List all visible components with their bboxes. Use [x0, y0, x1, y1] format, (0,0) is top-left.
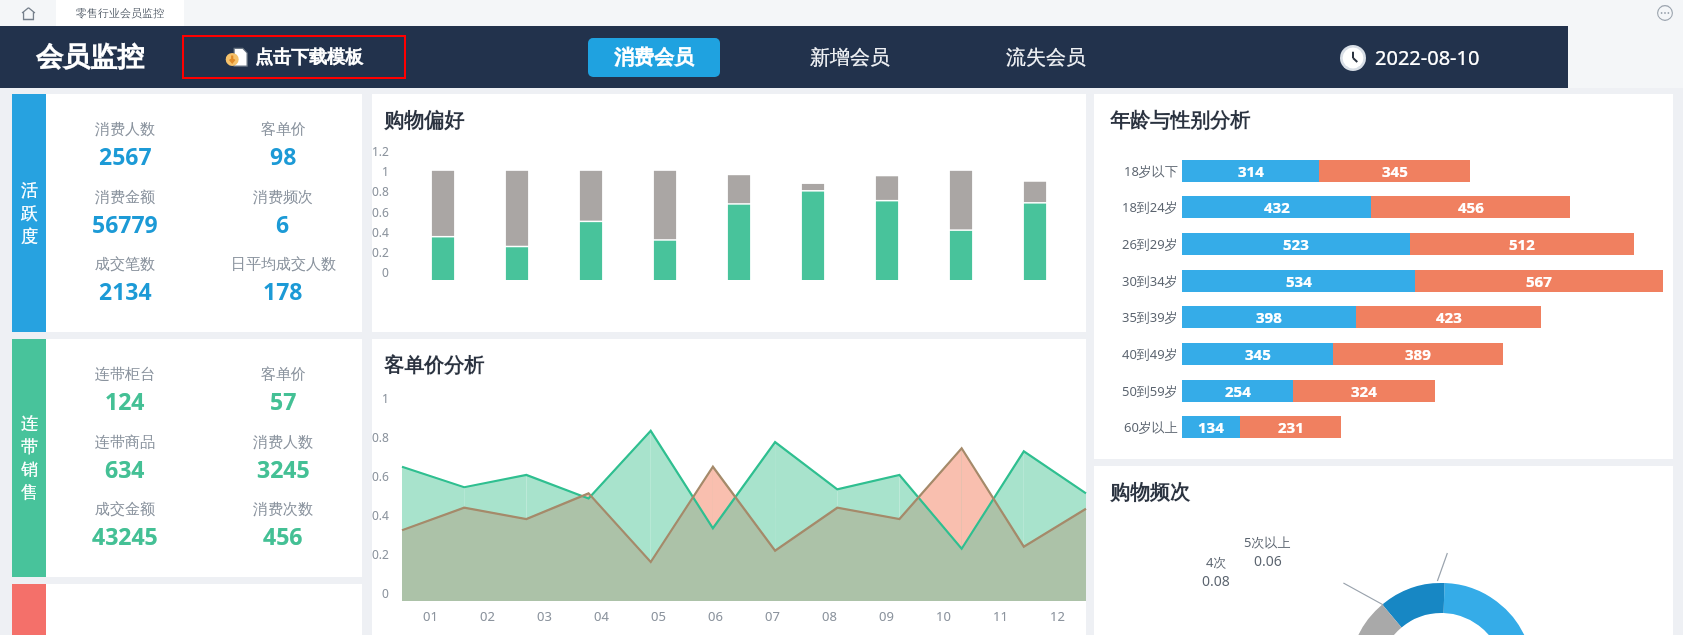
staticText: 度	[21, 226, 38, 247]
staticText: 05	[651, 607, 666, 625]
staticText: 35到39岁	[1122, 308, 1178, 326]
staticText: 18到24岁	[1122, 198, 1178, 216]
staticText: 0.2	[372, 546, 389, 562]
staticText: 432	[1264, 197, 1290, 217]
staticText: 124	[105, 385, 145, 416]
staticText: 客单价分析	[384, 353, 484, 378]
button[interactable]: 年龄与性别分析	[1094, 94, 1673, 459]
staticText: 0.8	[372, 429, 389, 445]
staticText: 50到59岁	[1122, 382, 1178, 400]
button[interactable]: 活	[12, 94, 362, 332]
staticText: 5次以上	[1244, 533, 1291, 551]
staticText: 0.6	[372, 204, 389, 220]
staticText: 客单价	[261, 365, 306, 384]
staticText: 消费人数	[253, 433, 313, 452]
button[interactable]: 消费会员	[588, 38, 720, 77]
staticText: 年龄与性别分析	[1110, 108, 1250, 133]
staticText: 带	[21, 436, 38, 457]
staticText: 389	[1405, 344, 1431, 364]
button[interactable]: 购物频次	[1094, 466, 1673, 635]
button[interactable]	[12, 584, 362, 635]
staticText: 连	[21, 413, 38, 434]
staticText: 6	[276, 208, 290, 239]
button[interactable]: Home	[0, 0, 56, 26]
staticText: 30到34岁	[1122, 272, 1178, 290]
staticText: 254	[1225, 381, 1251, 401]
staticText: 60岁以上	[1124, 418, 1178, 436]
staticText: 0	[382, 264, 389, 280]
staticText: 324	[1351, 381, 1377, 401]
button[interactable]: 新增会员	[784, 38, 916, 77]
staticText: 43245	[92, 520, 158, 551]
staticText: 流失会员	[1006, 45, 1086, 70]
staticText: 1	[382, 390, 389, 406]
staticText: 销	[21, 459, 38, 480]
staticText: 567	[1526, 271, 1552, 291]
staticText: 点击下载模板	[255, 46, 363, 69]
staticText: 4次	[1206, 553, 1227, 571]
staticText: 98	[270, 140, 297, 171]
staticText: 456	[263, 520, 303, 551]
button[interactable]: 点击下载模板	[182, 35, 406, 79]
staticText: 成交笔数	[95, 255, 155, 274]
staticText: 3245	[257, 453, 310, 484]
staticText: 09	[879, 607, 894, 625]
staticText: 消费次数	[253, 500, 313, 519]
staticText: 231	[1278, 417, 1304, 437]
staticText: 2134	[99, 275, 152, 306]
staticText: 18岁以下	[1124, 162, 1178, 180]
staticText: 512	[1509, 234, 1535, 254]
staticText: 04	[594, 607, 609, 625]
button[interactable]: 零售行业会员监控	[56, 0, 184, 26]
staticText: 购物偏好	[384, 108, 464, 133]
staticText: 活	[21, 180, 38, 201]
staticText: 1	[382, 163, 389, 179]
staticText: 消费人数	[95, 120, 155, 139]
staticText: 客单价	[261, 120, 306, 139]
button[interactable]: 购物偏好	[372, 94, 1086, 332]
staticText: 10	[936, 607, 951, 625]
staticText: 0.2	[372, 244, 389, 260]
staticText: 634	[105, 453, 145, 484]
staticText: 成交金额	[95, 500, 155, 519]
staticText: 523	[1283, 234, 1309, 254]
staticText: 08	[822, 607, 837, 625]
staticText: 连带商品	[95, 433, 155, 452]
staticText: 57	[270, 385, 297, 416]
staticText: 2567	[99, 140, 152, 171]
button[interactable]: 流失会员	[980, 38, 1112, 77]
staticText: 01	[423, 607, 438, 625]
button[interactable]: 客单价分析	[372, 339, 1086, 635]
staticText: 连带柜台	[95, 365, 155, 384]
staticText: 345	[1382, 161, 1408, 181]
staticText: 购物频次	[1110, 480, 1190, 505]
staticText: 跃	[21, 203, 38, 224]
staticText: 03	[537, 607, 552, 625]
staticText: 40到49岁	[1122, 345, 1178, 363]
staticText: 消费金额	[95, 188, 155, 207]
staticText: 26到29岁	[1122, 235, 1178, 253]
staticText: 07	[765, 607, 780, 625]
staticText: 398	[1256, 307, 1282, 327]
staticText: 会员监控	[36, 40, 144, 74]
staticText: 售	[21, 482, 38, 503]
staticText: 12	[1050, 607, 1065, 625]
button[interactable]: More options	[1657, 5, 1673, 21]
staticText: 日平均成交人数	[231, 255, 336, 274]
staticText: 314	[1238, 161, 1264, 181]
staticText: 1.2	[372, 143, 389, 159]
staticText: 0.6	[372, 468, 389, 484]
staticText: 0	[382, 585, 389, 601]
staticText: 345	[1245, 344, 1271, 364]
staticText: 新增会员	[810, 45, 890, 70]
staticText: 534	[1286, 271, 1312, 291]
staticText: 134	[1198, 417, 1224, 437]
staticText: 56779	[92, 208, 158, 239]
staticText: 0.08	[1202, 571, 1230, 590]
staticText: 零售行业会员监控	[76, 6, 164, 20]
staticText: 消费会员	[614, 45, 694, 70]
button[interactable]: 连	[12, 339, 362, 577]
staticText: 06	[708, 607, 723, 625]
staticText: 2022-08-10	[1375, 44, 1480, 71]
staticText: 0.4	[372, 507, 389, 523]
